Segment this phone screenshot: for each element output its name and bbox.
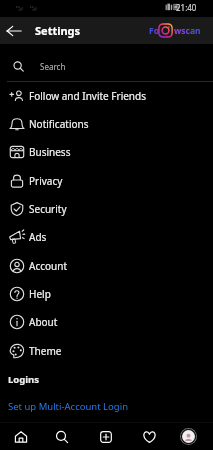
- staticText: Account: [29, 259, 68, 273]
- staticText: Settings: [35, 23, 81, 38]
- staticText: Privacy: [29, 174, 63, 188]
- button[interactable]: Ads: [0, 223, 213, 251]
- staticText: Fo: [149, 25, 159, 37]
- button[interactable]: Create: [86, 423, 126, 450]
- staticText: Follow and Invite Friends: [29, 89, 146, 103]
- button[interactable]: Search: [42, 423, 82, 450]
- staticText: Theme: [29, 344, 62, 358]
- button[interactable]: Back: [0, 17, 28, 44]
- staticText: Business: [29, 145, 71, 159]
- button[interactable]: Search: [0, 44, 213, 79]
- button[interactable]: Notifications: [0, 110, 213, 138]
- button[interactable]: Privacy: [0, 166, 213, 195]
- button[interactable]: Home: [1, 423, 41, 450]
- staticText: wscan: [174, 25, 201, 37]
- staticText: Search: [40, 61, 66, 72]
- staticText: Logins: [8, 373, 40, 386]
- button[interactable]: Security: [0, 195, 213, 223]
- staticText: 21:40: [176, 2, 197, 13]
- staticText: Set up Multi-Account Login: [8, 400, 129, 413]
- button[interactable]: Follow and Invite Friends: [0, 81, 213, 110]
- staticText: Help: [29, 287, 51, 301]
- staticText: Security: [29, 202, 67, 216]
- button[interactable]: Activity: [129, 423, 169, 450]
- staticText: About: [29, 315, 58, 329]
- button[interactable]: Profile: [168, 423, 208, 450]
- button[interactable]: Help: [0, 280, 213, 308]
- button[interactable]: Theme: [0, 336, 213, 365]
- button[interactable]: App logo: [149, 23, 201, 38]
- staticText: Notifications: [29, 117, 89, 131]
- staticText: Ads: [29, 230, 47, 244]
- button[interactable]: About: [0, 308, 213, 336]
- button[interactable]: Account: [0, 251, 213, 280]
- button[interactable]: Business: [0, 138, 213, 166]
- button[interactable]: Set up Multi-Account Login: [0, 393, 213, 420]
